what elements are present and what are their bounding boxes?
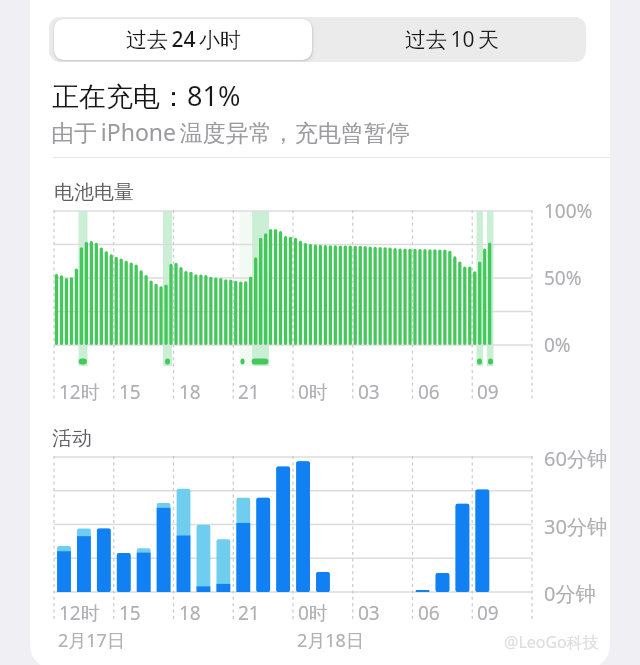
button[interactable]: 过去 24 小时: [54, 19, 312, 60]
staticText: 60分钟: [544, 445, 607, 472]
staticText: 15: [119, 379, 141, 405]
staticText: 0时: [298, 379, 328, 405]
staticText: 06: [418, 379, 440, 405]
staticText: 21: [238, 600, 260, 626]
staticText: 50%: [544, 265, 582, 291]
staticText: 电池电量: [54, 180, 134, 205]
staticText: 2月17日: [58, 628, 125, 653]
staticText: 09: [477, 600, 499, 626]
staticText: @LeoGo科技: [504, 631, 599, 653]
staticText: 15: [119, 600, 141, 626]
button[interactable]: 过去 10 天: [317, 17, 586, 62]
staticText: 过去 10 天: [405, 25, 499, 54]
staticText: 由于 iPhone 温度异常，充电曾暂停: [51, 116, 410, 147]
staticText: 30分钟: [544, 513, 607, 540]
staticText: 正在充电：81%: [52, 77, 241, 114]
staticText: 18: [179, 600, 201, 626]
staticText: 21: [238, 379, 260, 405]
staticText: 活动: [52, 426, 92, 451]
staticText: 0时: [298, 600, 328, 626]
staticText: 12时: [59, 600, 100, 626]
staticText: 09: [477, 379, 499, 405]
staticText: 18: [179, 379, 201, 405]
staticText: 0%: [544, 332, 571, 358]
staticText: 03: [358, 600, 380, 626]
staticText: 03: [358, 379, 380, 405]
staticText: 100%: [544, 198, 593, 224]
staticText: 0分钟: [544, 580, 596, 607]
staticText: 12时: [59, 379, 100, 405]
staticText: 2月18日: [297, 628, 364, 653]
staticText: 过去 24 小时: [126, 25, 241, 54]
staticText: 06: [418, 600, 440, 626]
